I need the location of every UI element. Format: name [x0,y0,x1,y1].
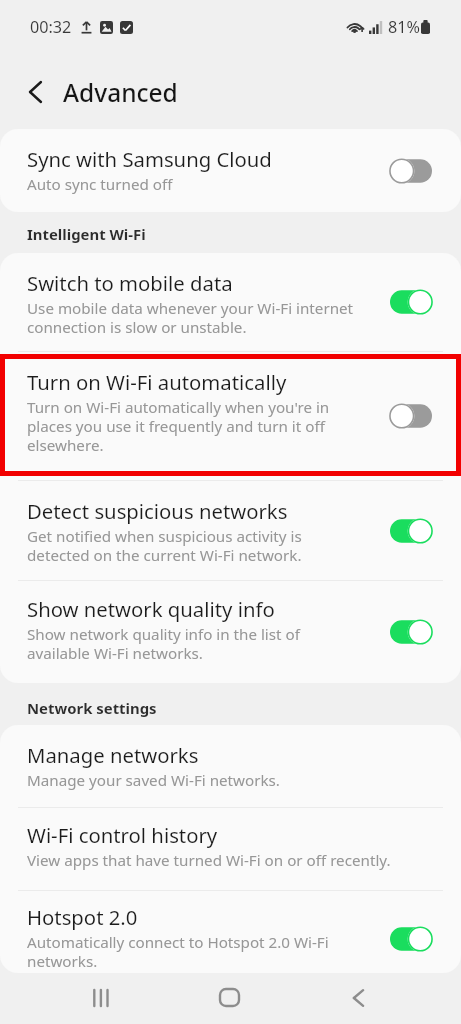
button[interactable]: Switch to mobile data [0,253,461,351]
staticText: Hotspot 2.0 [27,903,138,931]
button[interactable]: On [387,924,435,954]
staticText: Use mobile data whenever your Wi-Fi inte… [27,298,354,337]
staticText: Show network quality info [27,595,275,623]
button[interactable]: Detect suspicious networks [0,481,461,580]
button[interactable]: Manage networks [0,725,461,807]
button[interactable]: Off [387,156,435,186]
staticText: Show network quality info in the list of… [27,624,300,663]
staticText: Advanced [63,76,178,109]
button[interactable]: On [387,287,435,317]
button[interactable]: Back [6,63,64,121]
staticText: Turn on Wi-Fi automatically [27,368,287,396]
button[interactable]: On [387,516,435,546]
button[interactable]: Sync with Samsung Cloud [0,129,461,212]
staticText: Network settings [27,698,157,718]
staticText: Switch to mobile data [27,269,233,297]
staticText: Auto sync turned off [27,174,173,195]
staticText: Intelligent Wi-Fi [27,224,146,244]
staticText: View apps that have turned Wi-Fi on or o… [27,850,391,871]
staticText: Manage networks [27,741,199,769]
button[interactable]: Home [165,973,294,1022]
staticText: 00:32 [30,16,72,38]
button[interactable]: Off [387,401,435,431]
staticText: Automatically connect to Hotspot 2.0 Wi-… [27,932,329,971]
staticText: Turn on Wi-Fi automatically when you're … [27,397,330,455]
staticText: Wi-Fi control history [27,821,218,849]
button[interactable]: Recent apps [36,973,165,1022]
staticText: Sync with Samsung Cloud [27,145,272,173]
button[interactable]: Back [294,973,423,1022]
button[interactable]: Show network quality info [0,581,461,683]
staticText: Detect suspicious networks [27,497,288,525]
staticText: Get notified when suspicious activity is… [27,526,302,565]
button[interactable]: Turn on Wi-Fi automatically [0,352,461,480]
button[interactable]: Wi-Fi control history [0,808,461,890]
button[interactable]: On [387,617,435,647]
staticText: Manage your saved Wi-Fi networks. [27,770,280,791]
staticText: 81% [388,16,420,38]
button[interactable]: Hotspot 2.0 [0,880,461,973]
